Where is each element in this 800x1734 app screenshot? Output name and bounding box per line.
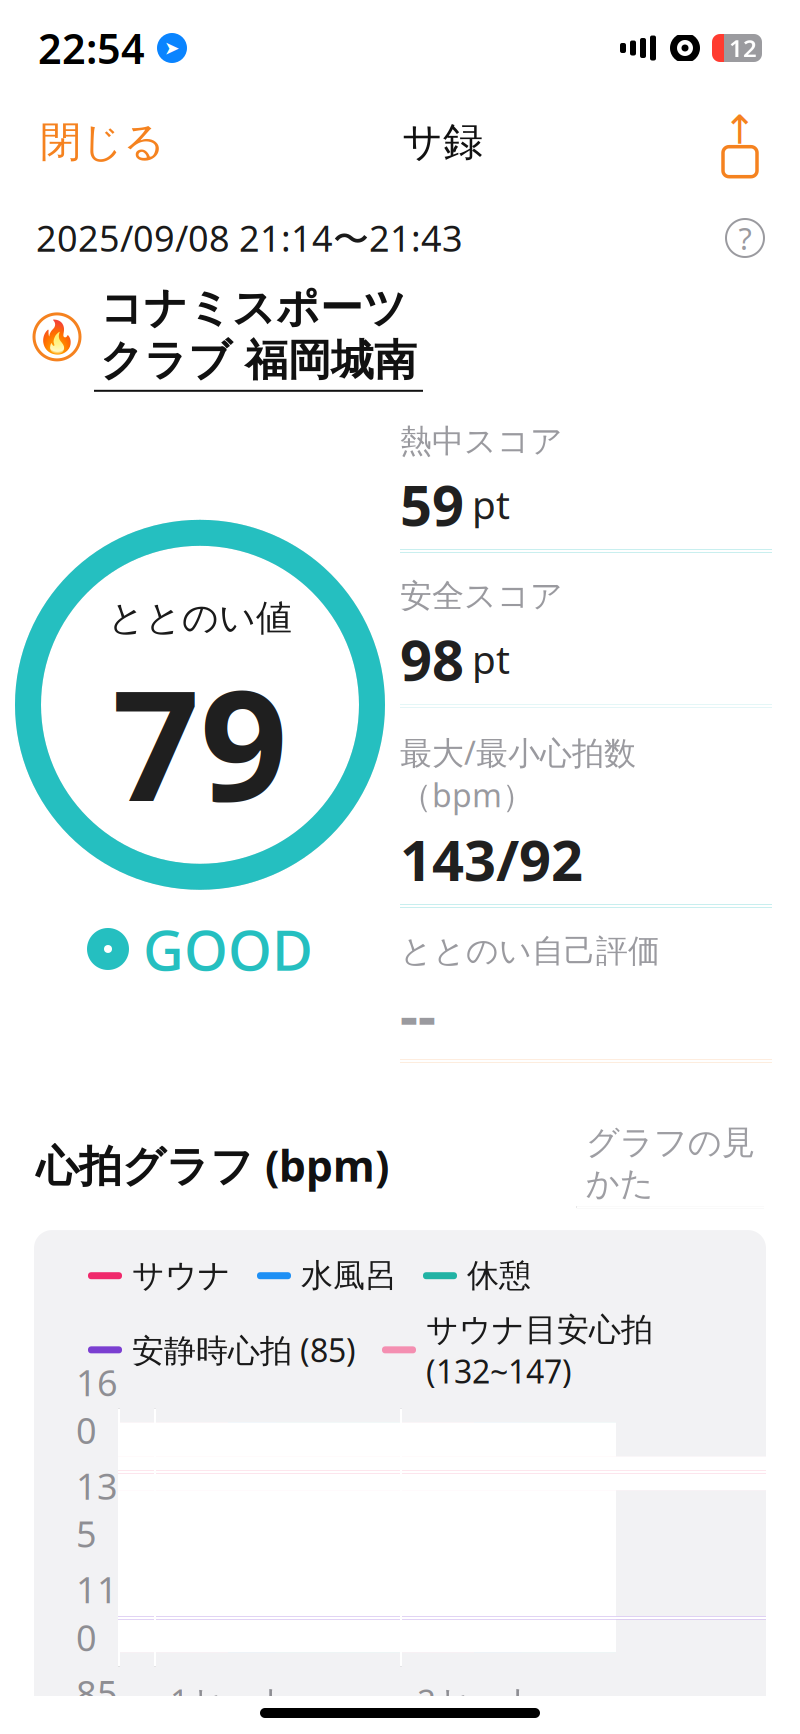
staticText: コナミスポーツクラブ 福岡城南 [100, 282, 417, 387]
staticText: 心拍グラフ (bpm) [36, 1137, 389, 1193]
staticText: 熱中スコア [400, 422, 563, 461]
staticText: 143/92 [400, 822, 583, 896]
staticText: ↑ [723, 107, 757, 153]
staticText: -- [400, 977, 436, 1051]
staticText: pt [472, 633, 510, 685]
staticText: 59 [400, 467, 464, 541]
staticText: 1セット [170, 1678, 291, 1723]
staticText: ととのい自己評価 [400, 931, 660, 971]
staticText: 22:54 [38, 21, 145, 75]
button[interactable]: 閉じる [32, 103, 173, 181]
button[interactable]: 共有 [712, 114, 768, 170]
staticText: 水風呂 [301, 1256, 397, 1295]
staticText: 安静時心拍 (85) [132, 1329, 356, 1371]
staticText: ととのい値 [108, 596, 292, 640]
staticText: 安全スコア [400, 576, 563, 616]
staticText: グラフの見かた [586, 1122, 755, 1204]
staticText: 最大/最小心拍数（bpm） [400, 731, 636, 816]
staticText: 85 [76, 1669, 118, 1717]
staticText: 休憩 [467, 1256, 531, 1295]
staticText: サ録 [402, 117, 483, 166]
staticText: 2セット [417, 1678, 538, 1723]
staticText: 12 [729, 32, 757, 64]
staticText: pt [472, 479, 510, 530]
staticText: 160 [76, 1358, 118, 1454]
staticText: サウナ [132, 1256, 231, 1295]
button[interactable]: 🔥 [0, 262, 800, 392]
button[interactable]: ヘルプ [726, 219, 764, 257]
staticText: ? [738, 218, 751, 258]
staticText: 閉じる [40, 117, 165, 167]
staticText: ➤ [164, 37, 180, 59]
staticText: 135 [76, 1462, 118, 1557]
staticText: 110 [76, 1565, 118, 1661]
staticText: 79 [112, 640, 288, 844]
staticText: 2025/09/08 21:14〜21:43 [36, 214, 463, 262]
button[interactable]: グラフの見かた [576, 1122, 764, 1208]
staticText: サウナ目安心拍 (132~147) [426, 1307, 653, 1392]
staticText: 98 [400, 622, 464, 696]
staticText: GOOD [143, 912, 313, 986]
staticText: 🔥 [37, 319, 77, 355]
